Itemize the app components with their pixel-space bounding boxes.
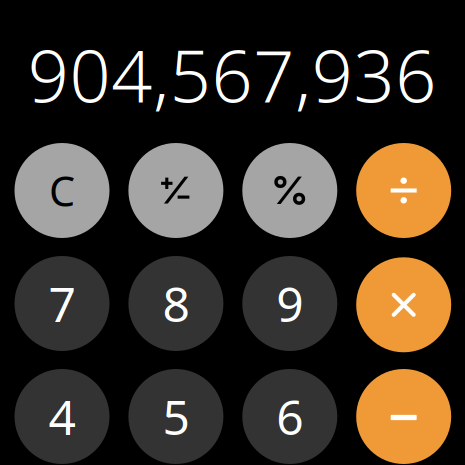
button[interactable]: 9 [242,256,337,351]
button[interactable]: Plus Minus [128,143,223,238]
button[interactable]: Percent [242,143,337,238]
button[interactable]: Minus [356,369,451,464]
button[interactable]: 5 [128,369,223,464]
staticText: C [49,163,75,218]
staticText: 904,567,936 [28,27,436,122]
staticText: 4 [48,385,75,448]
button[interactable]: C [14,143,109,238]
button[interactable]: 8 [128,256,223,351]
button[interactable]: 4 [14,369,109,464]
button[interactable]: 7 [14,256,109,351]
staticText: 8 [162,272,189,335]
staticText: 6 [276,385,303,448]
button[interactable]: 6 [242,369,337,464]
staticText: 5 [162,385,189,448]
button[interactable]: Divide [356,143,451,238]
button[interactable]: Multiply [356,257,451,352]
staticText: 7 [48,272,75,335]
staticText: 9 [276,272,303,335]
